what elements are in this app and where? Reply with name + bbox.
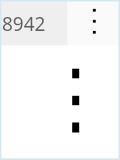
button[interactable]: List item 3 (0, 114, 120, 141)
button[interactable]: 8942 (0, 0, 67, 45)
staticText: 8942 (2, 11, 46, 37)
button[interactable]: List item 2 (0, 87, 120, 114)
button[interactable]: List item 1 (0, 60, 120, 87)
button[interactable]: More options (87, 6, 97, 38)
